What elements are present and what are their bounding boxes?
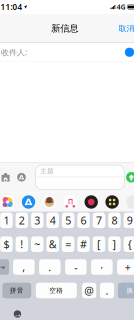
- staticText: .: [106, 283, 109, 298]
- button[interactable]: 6: [77, 212, 90, 228]
- button[interactable]: [: [93, 236, 105, 252]
- staticText: 11:04: [0, 2, 22, 12]
- button[interactable]: Switch keyboard: [11, 308, 23, 320]
- button[interactable]: Add contact: [121, 44, 134, 60]
- button[interactable]: 9: [124, 212, 134, 228]
- button[interactable]: &: [46, 236, 59, 252]
- staticText: -: [74, 260, 77, 274]
- button[interactable]: Camera: [1, 172, 10, 182]
- button[interactable]: -: [65, 259, 87, 275]
- button[interactable]: 空格: [36, 283, 77, 298]
- staticText: 空格: [49, 286, 63, 295]
- staticText: ·: [100, 260, 103, 274]
- staticText: 6: [81, 213, 87, 227]
- button[interactable]: {: [124, 236, 134, 252]
- button[interactable]: 取消: [116, 21, 134, 36]
- button[interactable]: ·: [91, 259, 113, 275]
- button[interactable]: Digital Touch: [84, 195, 98, 209]
- button[interactable]: Music: [64, 195, 77, 209]
- button[interactable]: #: [77, 236, 90, 252]
- button[interactable]: Send: [126, 172, 134, 182]
- button[interactable]: !: [16, 236, 28, 252]
- button[interactable]: 换行: [118, 283, 134, 298]
- button[interactable]: ]: [108, 236, 121, 252]
- button[interactable]: .: [39, 259, 61, 275]
- button[interactable]: Games: [105, 195, 119, 209]
- staticText: 5: [65, 213, 71, 227]
- button[interactable]: Photos: [1, 195, 14, 209]
- staticText: [: [97, 237, 101, 251]
- staticText: #+=: [0, 263, 5, 271]
- button[interactable]: 7: [93, 212, 105, 228]
- staticText: 收件人:: [1, 47, 27, 57]
- staticText: =: [65, 237, 71, 251]
- staticText: ,: [22, 260, 25, 274]
- staticText: &: [49, 237, 57, 251]
- staticText: 新信息: [51, 23, 78, 34]
- button[interactable]: =: [62, 236, 74, 252]
- button[interactable]: ~: [31, 236, 43, 252]
- staticText: 9: [127, 213, 133, 227]
- staticText: !: [20, 237, 23, 251]
- button[interactable]: 拼音: [2, 283, 31, 298]
- staticText: $: [3, 237, 9, 251]
- button[interactable]: #+=: [0, 259, 9, 275]
- button[interactable]: 4: [46, 212, 59, 228]
- staticText: 主题: [40, 167, 54, 175]
- staticText: @: [84, 283, 94, 298]
- button[interactable]: $: [0, 236, 13, 252]
- button[interactable]: Memoji: [43, 195, 56, 209]
- button[interactable]: App: [126, 195, 134, 209]
- button[interactable]: ,: [13, 259, 35, 275]
- staticText: 3: [34, 213, 40, 227]
- button[interactable]: App Store: [22, 195, 35, 209]
- staticText: 1: [3, 213, 9, 227]
- staticText: 取消: [118, 24, 134, 33]
- staticText: 2: [19, 213, 25, 227]
- button[interactable]: 1: [0, 212, 13, 228]
- staticText: 拼音: [10, 286, 24, 295]
- staticText: ~: [34, 237, 40, 251]
- staticText: 4: [50, 213, 56, 227]
- button[interactable]: 8: [108, 212, 121, 228]
- button[interactable]: @: [82, 283, 96, 298]
- button[interactable]: .: [100, 283, 114, 298]
- button[interactable]: 3: [31, 212, 43, 228]
- staticText: {: [128, 237, 132, 251]
- button[interactable]: +: [117, 259, 134, 275]
- button[interactable]: Apps: [17, 173, 26, 181]
- button[interactable]: 5: [62, 212, 74, 228]
- staticText: #: [80, 237, 87, 251]
- staticText: +: [125, 260, 131, 274]
- staticText: 7: [96, 213, 102, 227]
- staticText: .: [48, 260, 51, 274]
- staticText: 4G: [117, 3, 126, 11]
- staticText: 8: [111, 213, 117, 227]
- button[interactable]: 2: [16, 212, 28, 228]
- staticText: 换行: [127, 286, 134, 295]
- staticText: ]: [112, 237, 116, 251]
